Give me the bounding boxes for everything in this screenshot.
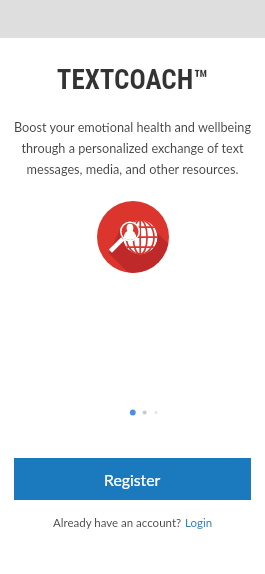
- staticText: Boost your emotional health and wellbein…: [12, 119, 253, 176]
- staticText: TEXTCOACH™: [0, 64, 265, 96]
- staticText: Register: [104, 470, 161, 489]
- staticText: Login: [185, 516, 213, 530]
- button[interactable]: Register: [14, 458, 251, 500]
- staticText: Already have an account?: [53, 516, 185, 530]
- button[interactable]: [0, 406, 265, 420]
- button[interactable]: Login: [185, 516, 213, 530]
